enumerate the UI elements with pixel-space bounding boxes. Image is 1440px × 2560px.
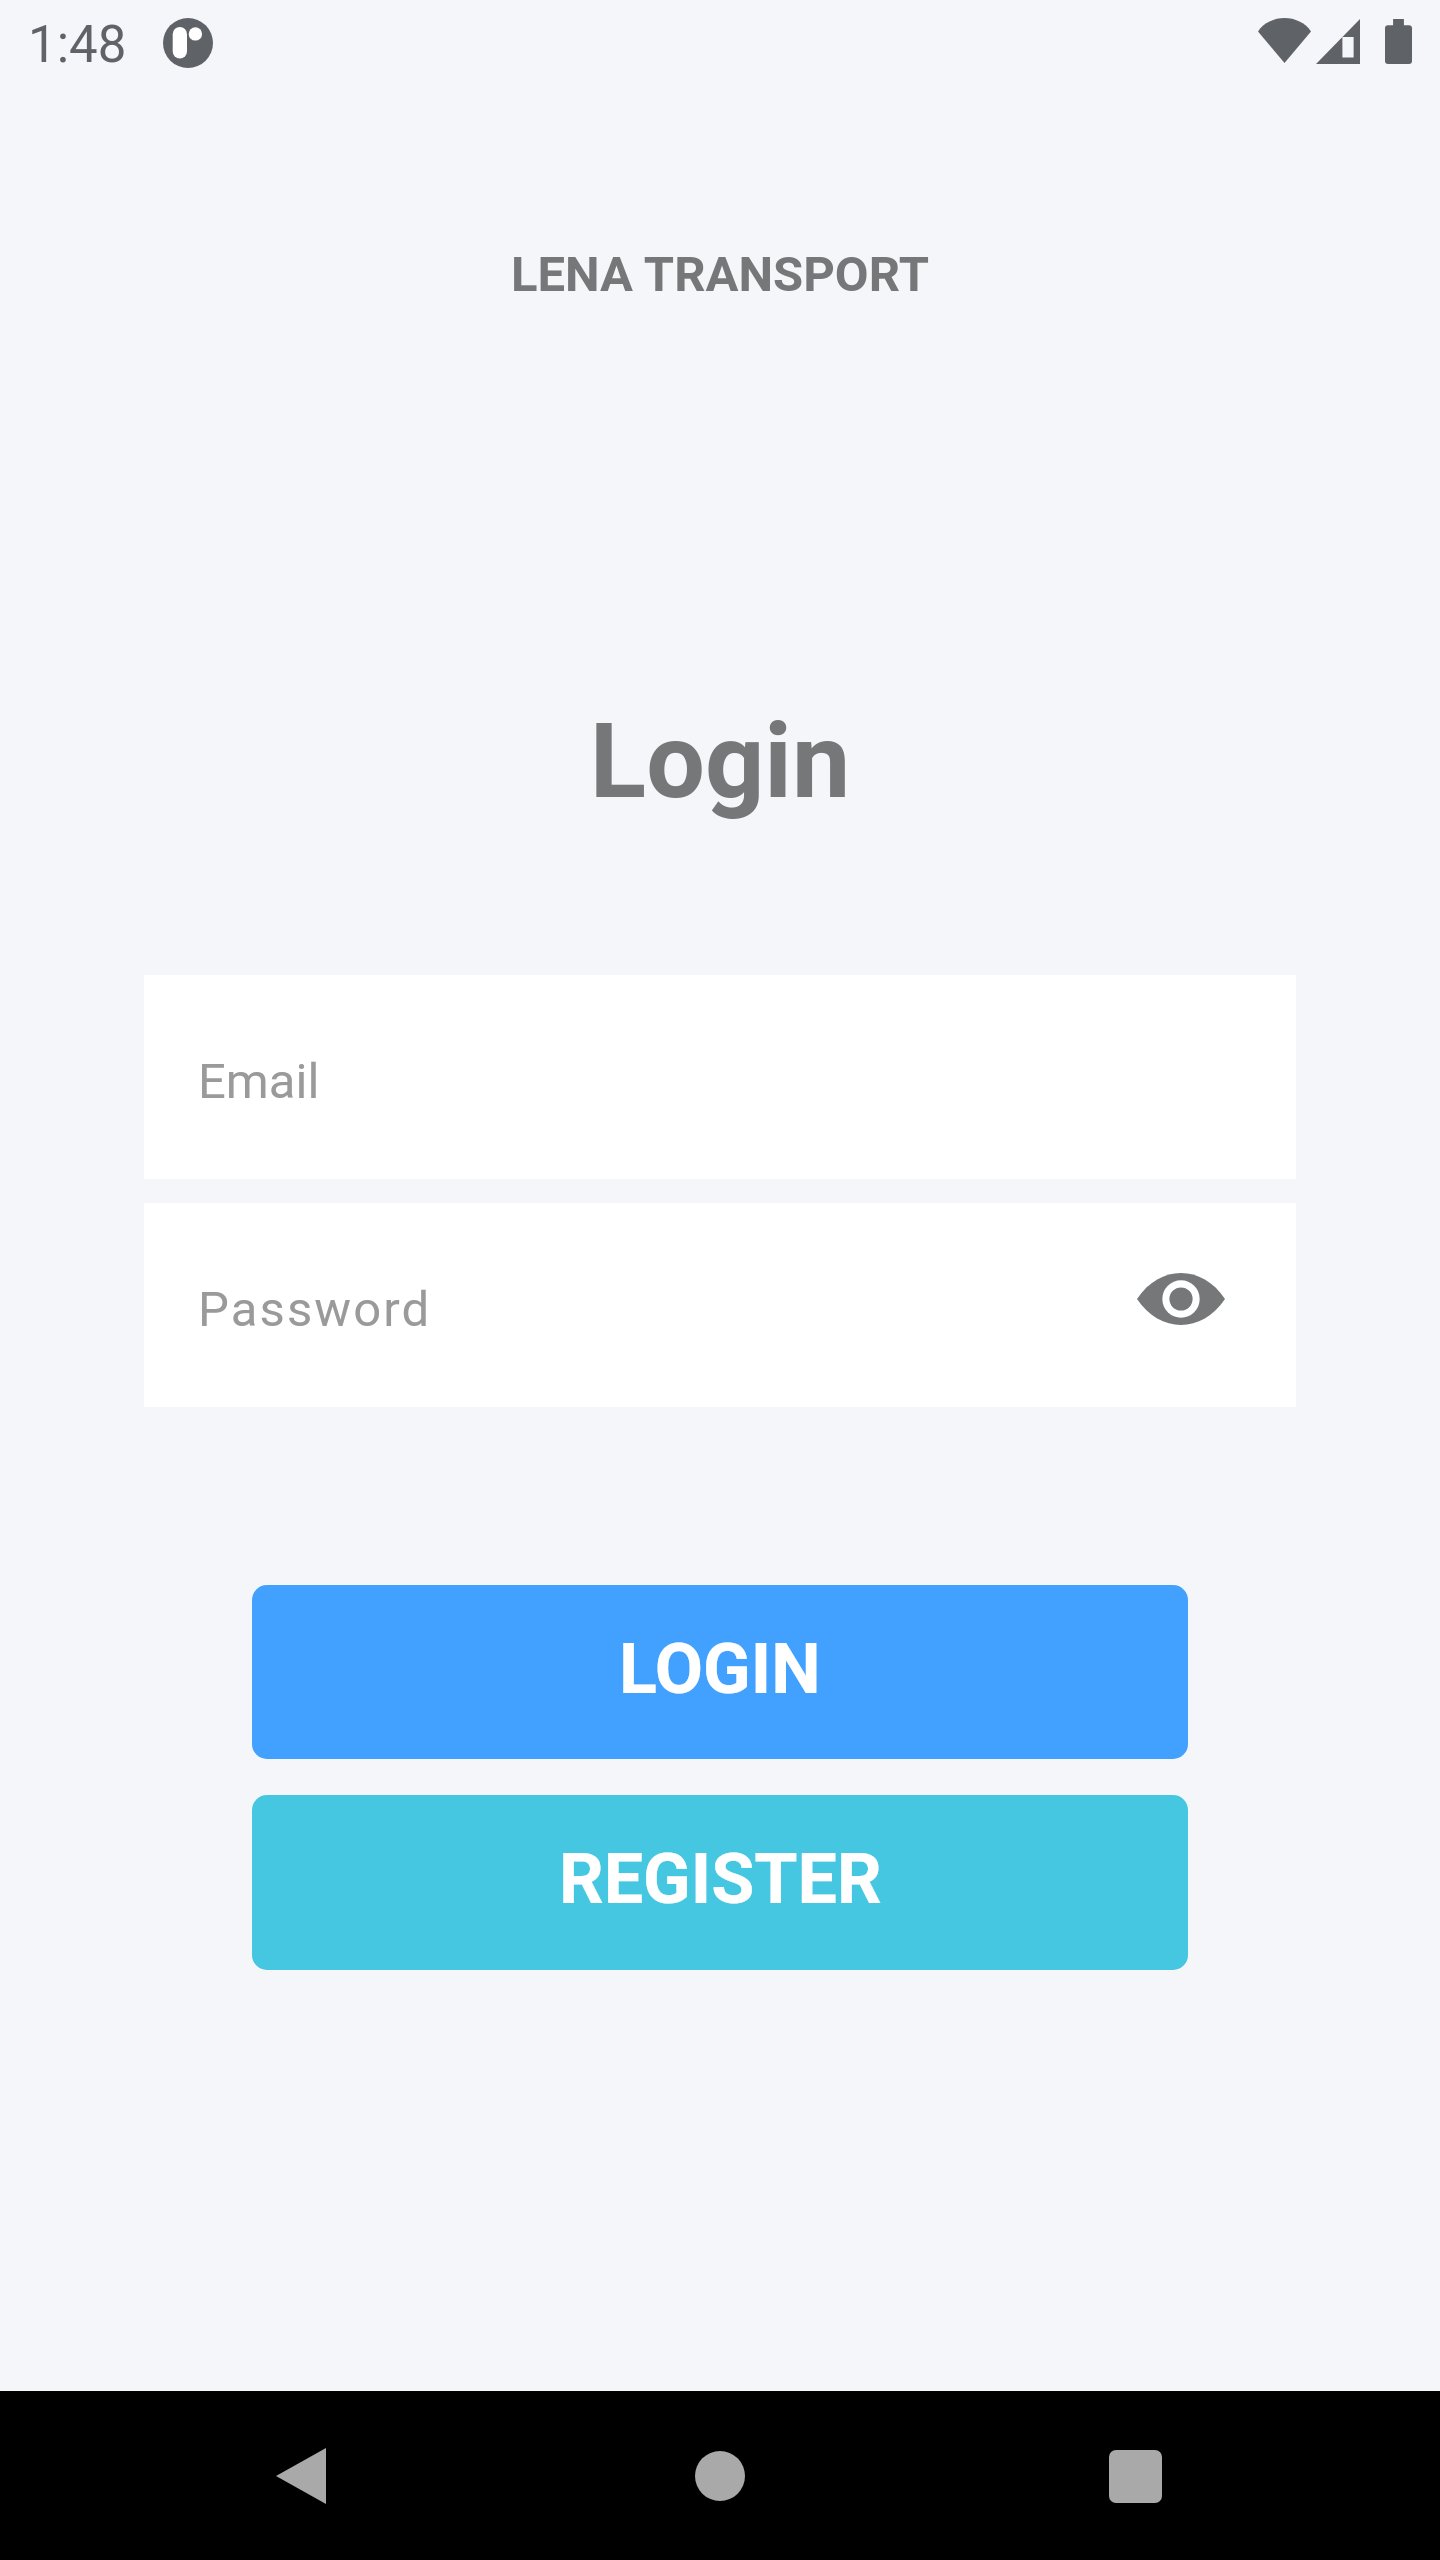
staticText: LENA TRANSPORT <box>0 246 1440 303</box>
button[interactable]: Back <box>241 2416 361 2536</box>
button[interactable]: REGISTER <box>252 1795 1188 1970</box>
button[interactable]: Email <box>144 975 1296 1179</box>
button[interactable]: Password <box>144 1203 1296 1407</box>
staticText: Login <box>0 701 1440 823</box>
button[interactable]: LOGIN <box>252 1585 1188 1759</box>
staticText: REGISTER <box>559 1838 882 1920</box>
button[interactable]: Recent apps <box>1075 2416 1195 2536</box>
staticText: Password <box>198 1281 432 1338</box>
button[interactable]: Show password <box>1119 1237 1243 1361</box>
staticText: 1:48 <box>28 15 127 75</box>
staticText: LOGIN <box>619 1628 821 1710</box>
staticText: Email <box>198 1053 320 1110</box>
button[interactable]: Home <box>660 2416 780 2536</box>
